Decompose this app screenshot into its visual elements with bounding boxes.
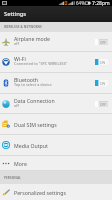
staticText: Media Output xyxy=(14,142,48,149)
button[interactable]: Switch off xyxy=(95,101,108,107)
staticText: Data Connection xyxy=(14,97,55,104)
button[interactable]: Dual SIM settings xyxy=(0,114,112,135)
staticText: Connected to "SPC WIRELESS" xyxy=(14,61,68,66)
staticText: Bluetooth xyxy=(14,76,39,83)
staticText: OFF xyxy=(100,102,106,106)
button[interactable]: Switch off xyxy=(95,39,108,45)
staticText: Personalized settings xyxy=(14,189,66,196)
button[interactable]: Switch on xyxy=(95,80,108,86)
staticText: off xyxy=(14,103,19,108)
button[interactable]: Media Output xyxy=(0,135,112,156)
staticText: Settings xyxy=(4,10,27,18)
staticText: Airplane mode xyxy=(14,35,50,42)
button[interactable]: More xyxy=(0,156,112,171)
staticText: Wi-Fi xyxy=(14,55,26,62)
button[interactable]: Settings xyxy=(0,6,112,22)
button[interactable]: Data Connection xyxy=(0,94,112,114)
staticText: PERSONAL xyxy=(4,176,22,180)
staticText: ON xyxy=(100,60,106,64)
staticText: off xyxy=(14,41,19,46)
staticText: OFF xyxy=(100,40,106,44)
button[interactable]: Airplane mode xyxy=(0,32,112,52)
staticText: Tap to select a device xyxy=(14,82,52,87)
button[interactable]: Wi-Fi xyxy=(0,52,112,73)
staticText: ON xyxy=(100,81,106,85)
staticText: WIRELESS & NETWORKS xyxy=(4,25,42,29)
staticText: More xyxy=(14,160,27,167)
staticText: Dual SIM settings xyxy=(14,121,57,128)
staticText: 7:28pm xyxy=(92,0,110,6)
button[interactable]: Personalized settings xyxy=(0,184,112,200)
button[interactable]: Bluetooth xyxy=(0,73,112,94)
staticText: 64% xyxy=(76,0,85,6)
button[interactable]: Switch on xyxy=(95,59,108,65)
